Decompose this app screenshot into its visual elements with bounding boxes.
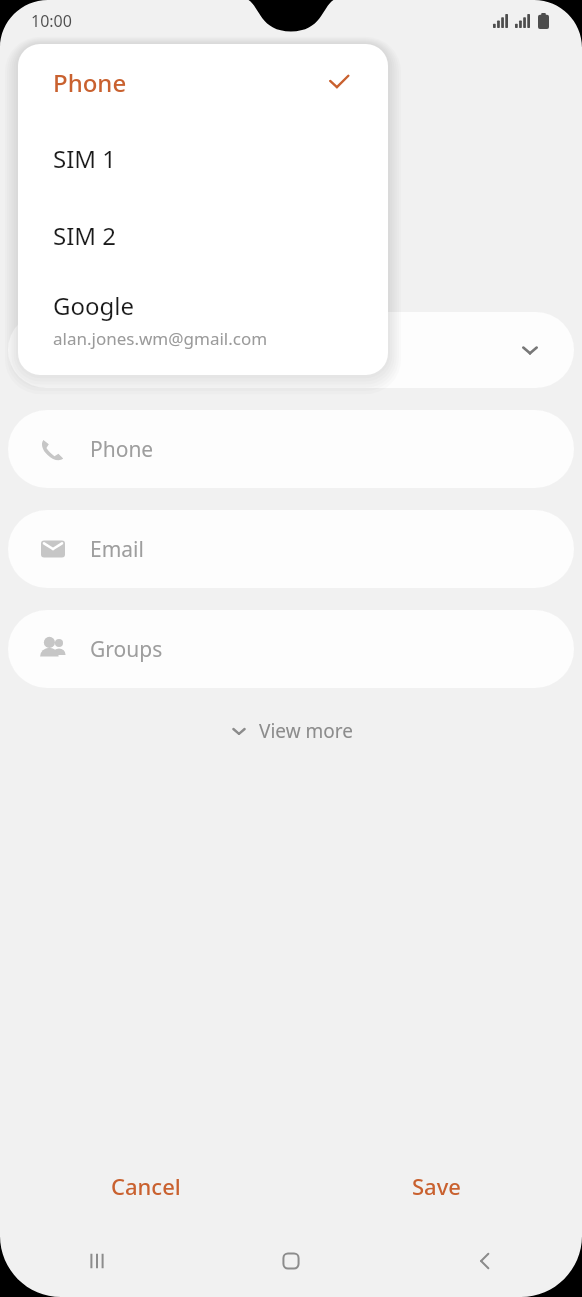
button[interactable]: Home [194, 1225, 388, 1297]
button[interactable]: SIM 2 [18, 197, 388, 274]
staticText: 10:00 [31, 10, 72, 32]
button[interactable]: View more [215, 708, 367, 754]
button[interactable]: Recent apps [0, 1225, 194, 1297]
button[interactable]: Cancel [0, 1147, 291, 1225]
button[interactable]: Email [8, 510, 574, 588]
button[interactable]: SIM 1 [18, 120, 388, 197]
staticText: Phone [90, 435, 154, 464]
button[interactable]: Save [291, 1147, 582, 1225]
button[interactable]: Groups [8, 610, 574, 688]
staticText: Google [53, 289, 134, 322]
staticText: Phone [53, 66, 127, 99]
staticText: SIM 1 [53, 142, 117, 175]
staticText: View more [259, 718, 353, 744]
staticText: alan.jones.wm@gmail.com [53, 327, 268, 350]
button[interactable] [8, 312, 574, 388]
staticText: SIM 2 [53, 219, 117, 252]
staticText: Groups [90, 635, 163, 664]
button[interactable]: Phone [18, 44, 388, 120]
button[interactable]: Phone [8, 410, 574, 488]
button[interactable]: Back [388, 1225, 582, 1297]
button[interactable]: Google [18, 274, 388, 364]
staticText: Save [412, 1171, 461, 1201]
staticText: Cancel [111, 1171, 181, 1201]
staticText: Email [90, 535, 144, 564]
